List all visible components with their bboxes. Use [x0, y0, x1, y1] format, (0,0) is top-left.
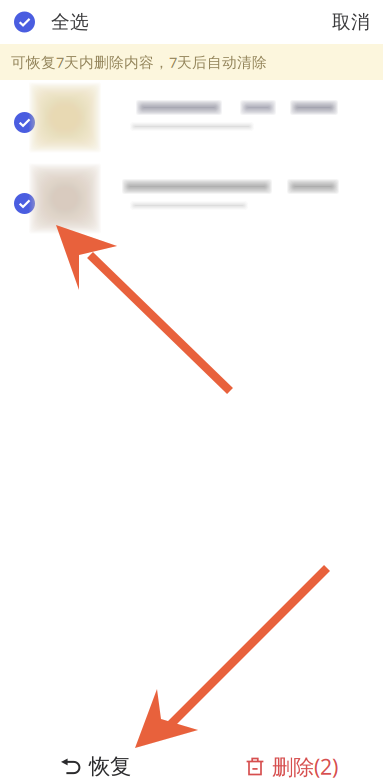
button[interactable]: 删除(2): [246, 751, 338, 782]
button[interactable]: [0, 82, 383, 163]
staticText: 可恢复7天内删除内容，7天后自动清除: [11, 52, 267, 72]
button[interactable]: [0, 163, 383, 244]
button[interactable]: 全选: [0, 0, 103, 44]
staticText: 取消: [332, 10, 370, 33]
button[interactable]: 恢复: [61, 751, 131, 782]
button[interactable]: 取消: [316, 0, 383, 44]
staticText: 全选: [51, 10, 89, 33]
staticText: 恢复: [89, 753, 131, 780]
staticText: 删除(2): [272, 752, 338, 781]
